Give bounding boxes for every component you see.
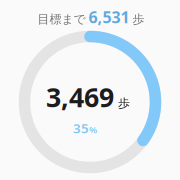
staticText: 歩 (132, 12, 144, 26)
staticText: 6,531 (88, 6, 129, 28)
staticText: 3,469 (46, 79, 114, 115)
staticText: % (89, 123, 97, 136)
staticText: 歩 (118, 96, 130, 111)
staticText: 35 (73, 119, 89, 137)
staticText: 目標まで (37, 12, 85, 26)
